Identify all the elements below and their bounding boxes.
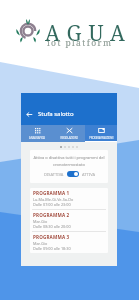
staticText: Dalle 09:00 alle 18:30 xyxy=(33,246,71,251)
staticText: PROGRAMMA 2 xyxy=(33,212,70,218)
staticText: PROGRAMMA 1 xyxy=(33,190,70,196)
staticText: PROGRAMMA 3 xyxy=(33,234,70,240)
staticText: DISATTIVA xyxy=(44,172,64,177)
button[interactable]: PROGRAMMA 3 xyxy=(30,232,108,253)
staticText: ANAGRAFICA xyxy=(29,136,45,140)
staticText: Dalle 08:30 alle 20:00 xyxy=(33,224,71,229)
button[interactable]: ANAGRAFICA xyxy=(21,125,53,142)
button[interactable]: REGOLAZIONI xyxy=(53,125,85,142)
staticText: AGUA xyxy=(45,19,132,48)
staticText: Mar-Gio xyxy=(33,241,48,246)
button[interactable]: PROGRAMMA 1 xyxy=(30,188,108,209)
button[interactable]: PROGRAMMA 2 xyxy=(30,210,108,231)
staticText: iot platform xyxy=(47,37,113,49)
staticText: PROGRAMMAZIONE xyxy=(89,136,114,140)
staticText: Mar-Gio xyxy=(33,219,48,224)
staticText: Lu-Ma-Me-Gi-Ve-Sa-Do xyxy=(33,197,74,202)
staticText: ATTIVA xyxy=(82,172,95,177)
button[interactable]: PROGRAMMAZIONE xyxy=(85,125,117,142)
button[interactable]: Toggle all programs xyxy=(67,171,79,177)
staticText: Dalle 07:00 alle 23:00 xyxy=(33,202,71,207)
staticText: REGOLAZIONI xyxy=(60,136,78,140)
staticText: Attiva o disattiva tutti i programmi del… xyxy=(33,155,105,167)
button[interactable]: Back xyxy=(24,109,34,119)
staticText: Stufa salotto xyxy=(38,110,74,118)
